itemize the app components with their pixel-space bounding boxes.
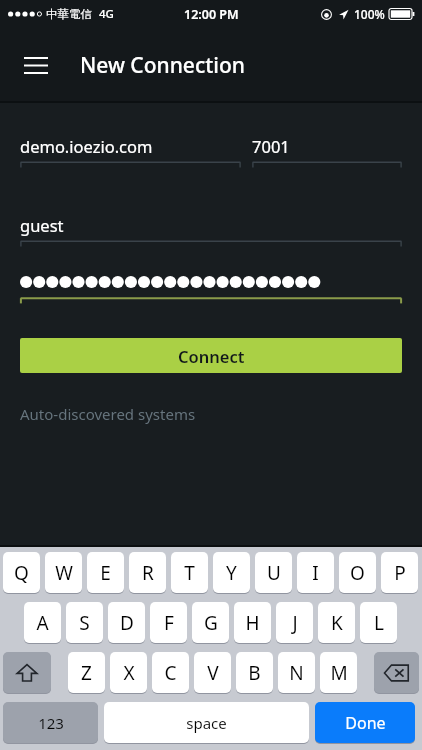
button[interactable]: 123: [3, 702, 98, 743]
staticText: 中華電信: [46, 7, 92, 21]
staticText: Y: [226, 560, 237, 586]
staticText: L: [374, 610, 384, 636]
staticText: X: [123, 660, 135, 686]
button[interactable]: [20, 266, 402, 305]
button[interactable]: F: [150, 602, 187, 643]
button[interactable]: Auto-discovered systems: [20, 404, 196, 424]
button[interactable]: X: [110, 652, 147, 693]
button[interactable]: E: [87, 552, 124, 593]
staticText: 12:00 PM: [184, 6, 239, 23]
button[interactable]: T: [171, 552, 208, 593]
button[interactable]: I: [297, 552, 334, 593]
button[interactable]: K: [318, 602, 355, 643]
staticText: V: [207, 660, 219, 686]
staticText: demo.ioezio.com: [20, 135, 153, 157]
button[interactable]: A: [24, 602, 61, 643]
staticText: J: [292, 610, 298, 636]
staticText: Auto-discovered systems: [20, 404, 196, 424]
button[interactable]: L: [360, 602, 397, 643]
button[interactable]: D: [108, 602, 145, 643]
button[interactable]: O: [339, 552, 376, 593]
button[interactable]: P: [381, 552, 418, 593]
button[interactable]: Z: [68, 652, 105, 693]
staticText: 123: [38, 713, 64, 733]
staticText: Z: [81, 660, 92, 686]
staticText: Q: [14, 560, 29, 586]
button[interactable]: V: [194, 652, 231, 693]
button[interactable]: S: [66, 602, 103, 643]
button[interactable]: Open navigation menu: [12, 41, 60, 89]
button[interactable]: H: [234, 602, 271, 643]
staticText: R: [142, 560, 154, 586]
staticText: P: [394, 560, 406, 586]
staticText: Done: [345, 712, 386, 734]
staticText: C: [164, 660, 177, 686]
staticText: Connect: [178, 345, 245, 367]
staticText: 7001: [252, 135, 290, 157]
staticText: guest: [20, 214, 64, 236]
button[interactable]: guest: [20, 209, 402, 248]
staticText: H: [245, 610, 260, 636]
button[interactable]: Q: [3, 552, 40, 593]
staticText: S: [79, 610, 90, 636]
staticText: E: [100, 560, 111, 586]
staticText: I: [312, 560, 319, 586]
button[interactable]: 7001: [252, 130, 402, 169]
staticText: T: [184, 560, 195, 586]
staticText: B: [248, 660, 261, 686]
staticText: New Connection: [80, 51, 245, 80]
button[interactable]: Y: [213, 552, 250, 593]
button[interactable]: C: [152, 652, 189, 693]
staticText: N: [289, 660, 304, 686]
button[interactable]: Shift: [3, 652, 51, 693]
button[interactable]: Backspace: [374, 652, 419, 693]
button[interactable]: G: [192, 602, 229, 643]
staticText: 100%: [354, 6, 385, 22]
button[interactable]: demo.ioezio.com: [20, 130, 241, 169]
staticText: D: [120, 610, 134, 636]
staticText: W: [55, 560, 73, 586]
staticText: space: [186, 713, 227, 733]
staticText: A: [36, 610, 49, 636]
staticText: 4G: [99, 6, 114, 22]
staticText: M: [330, 660, 348, 686]
button[interactable]: Connect: [20, 338, 402, 373]
staticText: U: [267, 560, 281, 586]
button[interactable]: space: [104, 702, 309, 743]
staticText: O: [350, 560, 365, 586]
button[interactable]: U: [255, 552, 292, 593]
staticText: K: [331, 610, 343, 636]
button[interactable]: N: [278, 652, 315, 693]
button[interactable]: B: [236, 652, 273, 693]
button[interactable]: R: [129, 552, 166, 593]
staticText: G: [204, 610, 218, 636]
button[interactable]: Done: [315, 702, 415, 743]
button[interactable]: J: [276, 602, 313, 643]
button[interactable]: W: [45, 552, 82, 593]
staticText: F: [164, 610, 174, 636]
button[interactable]: M: [320, 652, 357, 693]
